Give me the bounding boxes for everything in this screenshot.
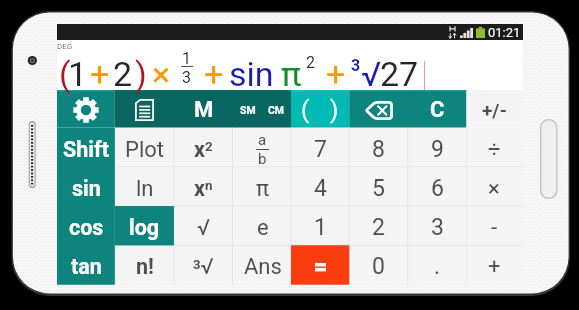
button[interactable]: √	[174, 206, 233, 245]
button[interactable]: a	[233, 128, 292, 167]
staticText: e	[257, 215, 269, 241]
button[interactable]: (	[291, 90, 320, 128]
button[interactable]: 2	[349, 206, 408, 245]
staticText: 6	[431, 175, 444, 202]
staticText: +	[204, 54, 224, 94]
staticText: √	[197, 215, 211, 241]
staticText: CM	[268, 104, 285, 116]
staticText: 2	[306, 53, 315, 72]
staticText: 1	[314, 214, 327, 241]
staticText: .	[434, 253, 441, 280]
staticText: )	[135, 54, 147, 94]
staticText: 01:21	[488, 25, 521, 40]
staticText: x2	[194, 137, 213, 162]
button[interactable]: cos	[57, 206, 115, 245]
staticText: ÷	[488, 137, 501, 163]
button[interactable]: .	[408, 245, 466, 284]
button[interactable]: ln	[115, 167, 174, 206]
button[interactable]: M	[174, 90, 233, 128]
staticText: ln	[136, 176, 154, 202]
staticText: π	[256, 176, 270, 202]
button[interactable]: n!	[115, 245, 174, 284]
staticText: 0	[372, 253, 385, 280]
staticText: Plot	[125, 137, 164, 163]
staticText: +	[488, 254, 501, 280]
button[interactable]: Plot	[115, 128, 174, 167]
staticText: (	[59, 54, 71, 94]
button[interactable]: ×	[466, 167, 522, 206]
button[interactable]: 6	[408, 167, 466, 206]
button[interactable]: log	[115, 206, 174, 245]
staticText: ×	[488, 176, 500, 202]
staticText: 5	[372, 175, 385, 202]
staticText: b	[258, 150, 267, 168]
staticText: )	[330, 96, 339, 124]
button[interactable]	[291, 245, 349, 284]
staticText: 9	[431, 136, 444, 163]
button[interactable]: tan	[57, 245, 115, 284]
staticText: log	[129, 215, 160, 240]
button[interactable]: 8	[349, 128, 408, 167]
staticText: SM	[240, 104, 256, 116]
staticText: a	[258, 131, 267, 149]
button[interactable]: 0	[349, 245, 408, 284]
button[interactable]: xn	[174, 167, 233, 206]
button[interactable]: -	[466, 206, 522, 245]
staticText: (	[301, 96, 310, 124]
staticText: 2	[372, 214, 385, 241]
button[interactable]: C	[408, 90, 466, 128]
staticText: -	[491, 215, 498, 241]
staticText: sin	[72, 176, 101, 201]
button[interactable]: 4	[291, 167, 349, 206]
staticText: 7	[314, 136, 327, 163]
button[interactable]: π	[233, 167, 292, 206]
staticText: +	[326, 54, 346, 94]
button[interactable]: Backspace	[349, 90, 408, 128]
staticText: +/-	[482, 99, 507, 121]
staticText: Ans	[244, 254, 282, 280]
staticText: +	[90, 54, 110, 94]
staticText: sin	[229, 54, 274, 94]
button[interactable]: 7	[291, 128, 349, 167]
button[interactable]: Shift	[57, 128, 115, 167]
staticText: C	[430, 97, 445, 123]
staticText: 3√	[193, 254, 214, 280]
staticText: ×	[152, 54, 171, 94]
button[interactable]: 9	[408, 128, 466, 167]
button[interactable]: e	[233, 206, 292, 245]
staticText: 1	[68, 54, 88, 94]
staticText: 4	[314, 175, 327, 202]
staticText: 3	[182, 68, 191, 87]
button[interactable]: Ans	[233, 245, 292, 284]
button[interactable]: )	[320, 90, 349, 128]
staticText: xn	[194, 176, 213, 201]
button[interactable]: ÷	[466, 128, 522, 167]
staticText: 3	[351, 56, 361, 75]
button[interactable]: 1	[291, 206, 349, 245]
staticText: tan	[71, 254, 102, 279]
button[interactable]: +/-	[466, 90, 522, 128]
staticText: 8	[372, 136, 385, 163]
button[interactable]: SM	[233, 90, 262, 128]
button[interactable]: History	[115, 90, 174, 128]
staticText: 27	[380, 54, 419, 94]
button[interactable]: 3√	[174, 245, 233, 284]
staticText: √	[361, 54, 382, 94]
staticText: Shift	[63, 137, 109, 162]
button[interactable]: 5	[349, 167, 408, 206]
staticText: 1	[182, 49, 191, 68]
staticText: 3	[431, 214, 444, 241]
button[interactable]: sin	[57, 167, 115, 206]
button[interactable]: x2	[174, 128, 233, 167]
button[interactable]: +	[466, 245, 522, 284]
staticText: M	[194, 97, 214, 123]
staticText: 2	[113, 54, 133, 94]
staticText: π	[281, 54, 302, 94]
staticText: DEG	[57, 42, 73, 51]
button[interactable]: Settings	[57, 90, 115, 128]
staticText: cos	[69, 215, 104, 240]
button[interactable]: 3	[408, 206, 466, 245]
staticText: n!	[136, 254, 154, 279]
button[interactable]: CM	[262, 90, 291, 128]
